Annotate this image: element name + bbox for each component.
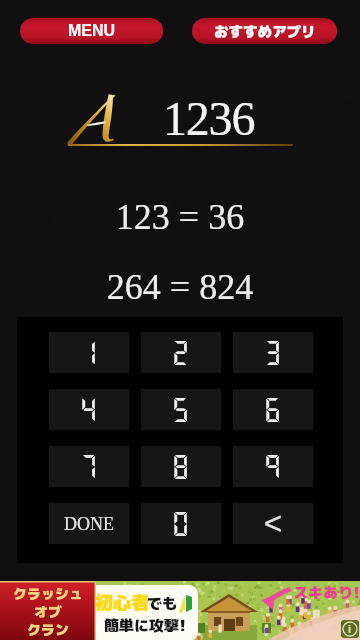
- staticText: i: [348, 623, 352, 635]
- staticText: 123 = 36: [0, 197, 360, 237]
- button[interactable]: 3: [233, 332, 313, 373]
- staticText: 簡単に攻撃!: [104, 615, 187, 636]
- staticText: おすすめアプリ: [214, 21, 316, 41]
- staticText: 9: [263, 451, 283, 482]
- button[interactable]: 2: [141, 332, 221, 373]
- button[interactable]: スキあり!: [0, 581, 360, 640]
- staticText: でも: [147, 593, 178, 614]
- staticText: 5: [171, 394, 191, 425]
- staticText: 264 = 824: [0, 267, 360, 307]
- staticText: 1: [79, 337, 99, 368]
- button[interactable]: おすすめアプリ: [192, 18, 337, 44]
- staticText: <: [264, 506, 283, 541]
- staticText: 4: [79, 394, 99, 425]
- other: Backspace: [233, 503, 313, 544]
- staticText: 2: [171, 337, 191, 368]
- staticText: 8: [171, 451, 191, 482]
- button[interactable]: 5: [141, 389, 221, 430]
- button[interactable]: 4: [49, 389, 129, 430]
- button[interactable]: 8: [141, 446, 221, 487]
- button[interactable]: 6: [233, 389, 313, 430]
- staticText: クラッシュ オブ クラン: [0, 584, 96, 640]
- staticText: 7: [79, 451, 99, 482]
- staticText: DONE: [64, 514, 114, 534]
- button[interactable]: 9: [233, 446, 313, 487]
- staticText: 初心者: [95, 590, 149, 615]
- button[interactable]: DONE: [49, 503, 129, 544]
- button[interactable]: 0: [141, 503, 221, 544]
- button[interactable]: MENU: [20, 18, 163, 44]
- button[interactable]: 7: [49, 446, 129, 487]
- staticText: 6: [263, 394, 283, 425]
- staticText: MENU: [68, 22, 116, 40]
- button[interactable]: 1: [49, 332, 129, 373]
- staticText: 0: [171, 508, 191, 539]
- staticText: スキあり!: [293, 582, 360, 603]
- staticText: 1236: [163, 92, 255, 145]
- staticText: 3: [263, 337, 283, 368]
- button[interactable]: Backspace: [233, 503, 313, 544]
